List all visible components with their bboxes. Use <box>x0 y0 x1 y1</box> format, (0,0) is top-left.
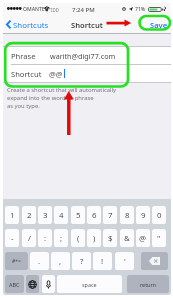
button[interactable]: ? <box>72 252 91 270</box>
staticText: 71% <box>135 6 146 13</box>
button[interactable]: Dictate <box>42 275 55 293</box>
button[interactable]: #+= <box>5 252 28 270</box>
button[interactable]: ( <box>71 229 85 247</box>
staticText: ? <box>80 256 84 267</box>
staticText: @ <box>139 233 147 244</box>
button[interactable]: ABC <box>5 275 24 293</box>
staticText: ' <box>124 256 126 267</box>
button[interactable]: @ <box>136 229 150 247</box>
button[interactable]: 5 <box>71 206 85 224</box>
button[interactable]: return <box>127 275 169 293</box>
button[interactable]: ' <box>115 252 134 270</box>
button[interactable]: 7 <box>103 206 117 224</box>
button[interactable]: 2 <box>22 206 36 224</box>
button[interactable]: : <box>38 229 52 247</box>
button[interactable]: ; <box>54 229 68 247</box>
staticText: $ <box>108 233 113 244</box>
staticText: 8 <box>125 210 130 221</box>
staticText: 5 <box>76 210 81 221</box>
button[interactable]: 8 <box>120 206 134 224</box>
staticText: ABC <box>9 281 20 288</box>
button[interactable]: 6 <box>87 206 101 224</box>
button[interactable]: 9 <box>136 206 150 224</box>
button[interactable]: Delete <box>141 252 168 270</box>
button[interactable]: . <box>30 252 49 270</box>
staticText: 7 <box>108 210 113 221</box>
button[interactable]: ) <box>87 229 101 247</box>
button[interactable]: 0 <box>152 206 166 224</box>
staticText: 3 <box>43 210 48 221</box>
staticText: ( <box>77 233 80 244</box>
staticText: ) <box>93 233 96 244</box>
button[interactable]: Shortcuts <box>3 15 47 34</box>
button[interactable] <box>3 64 171 82</box>
button[interactable]: / <box>22 229 36 247</box>
staticText: Shortcut <box>11 69 42 79</box>
staticText: ! <box>101 256 104 267</box>
staticText: IDD <box>51 7 59 13</box>
button[interactable]: $ <box>103 229 117 247</box>
staticText: , <box>59 256 62 267</box>
staticText: 6 <box>92 210 97 221</box>
button[interactable]: " <box>152 229 166 247</box>
button[interactable]: - <box>5 229 19 247</box>
staticText: 2 <box>27 210 32 221</box>
staticText: warith@digi77.com <box>50 51 116 61</box>
button[interactable]: 3 <box>38 206 52 224</box>
button[interactable]: space <box>57 275 122 293</box>
button[interactable]: 1 <box>5 206 19 224</box>
staticText: Phrase <box>11 51 36 61</box>
staticText: Create a shortcut that will automaticall… <box>7 86 117 110</box>
staticText: 7:24 PM <box>72 6 95 14</box>
staticText: Shortcuts <box>13 20 49 31</box>
staticText: 4 <box>59 210 64 221</box>
button[interactable]: , <box>51 252 70 270</box>
staticText: & <box>124 233 130 244</box>
staticText: / <box>28 233 31 244</box>
button[interactable]: Save <box>146 15 171 34</box>
button[interactable] <box>3 46 171 64</box>
button[interactable]: & <box>120 229 134 247</box>
button[interactable]: Switch keyboard <box>26 275 39 293</box>
staticText: ; <box>60 233 63 244</box>
staticText: 0 <box>157 210 162 221</box>
staticText: space <box>82 281 97 288</box>
staticText: 1 <box>10 210 15 221</box>
staticText: 9 <box>141 210 146 221</box>
staticText: . <box>38 256 41 267</box>
staticText: - <box>11 233 14 244</box>
staticText: OMANTEL <box>23 6 48 13</box>
staticText: : <box>44 233 47 244</box>
staticText: @@ <box>49 69 63 79</box>
button[interactable]: ! <box>93 252 112 270</box>
staticText: #+= <box>12 258 21 265</box>
staticText: return <box>140 281 156 288</box>
staticText: Save <box>150 20 168 30</box>
button[interactable]: 4 <box>54 206 68 224</box>
staticText: Shortcut <box>71 20 103 30</box>
staticText: " <box>157 233 161 244</box>
